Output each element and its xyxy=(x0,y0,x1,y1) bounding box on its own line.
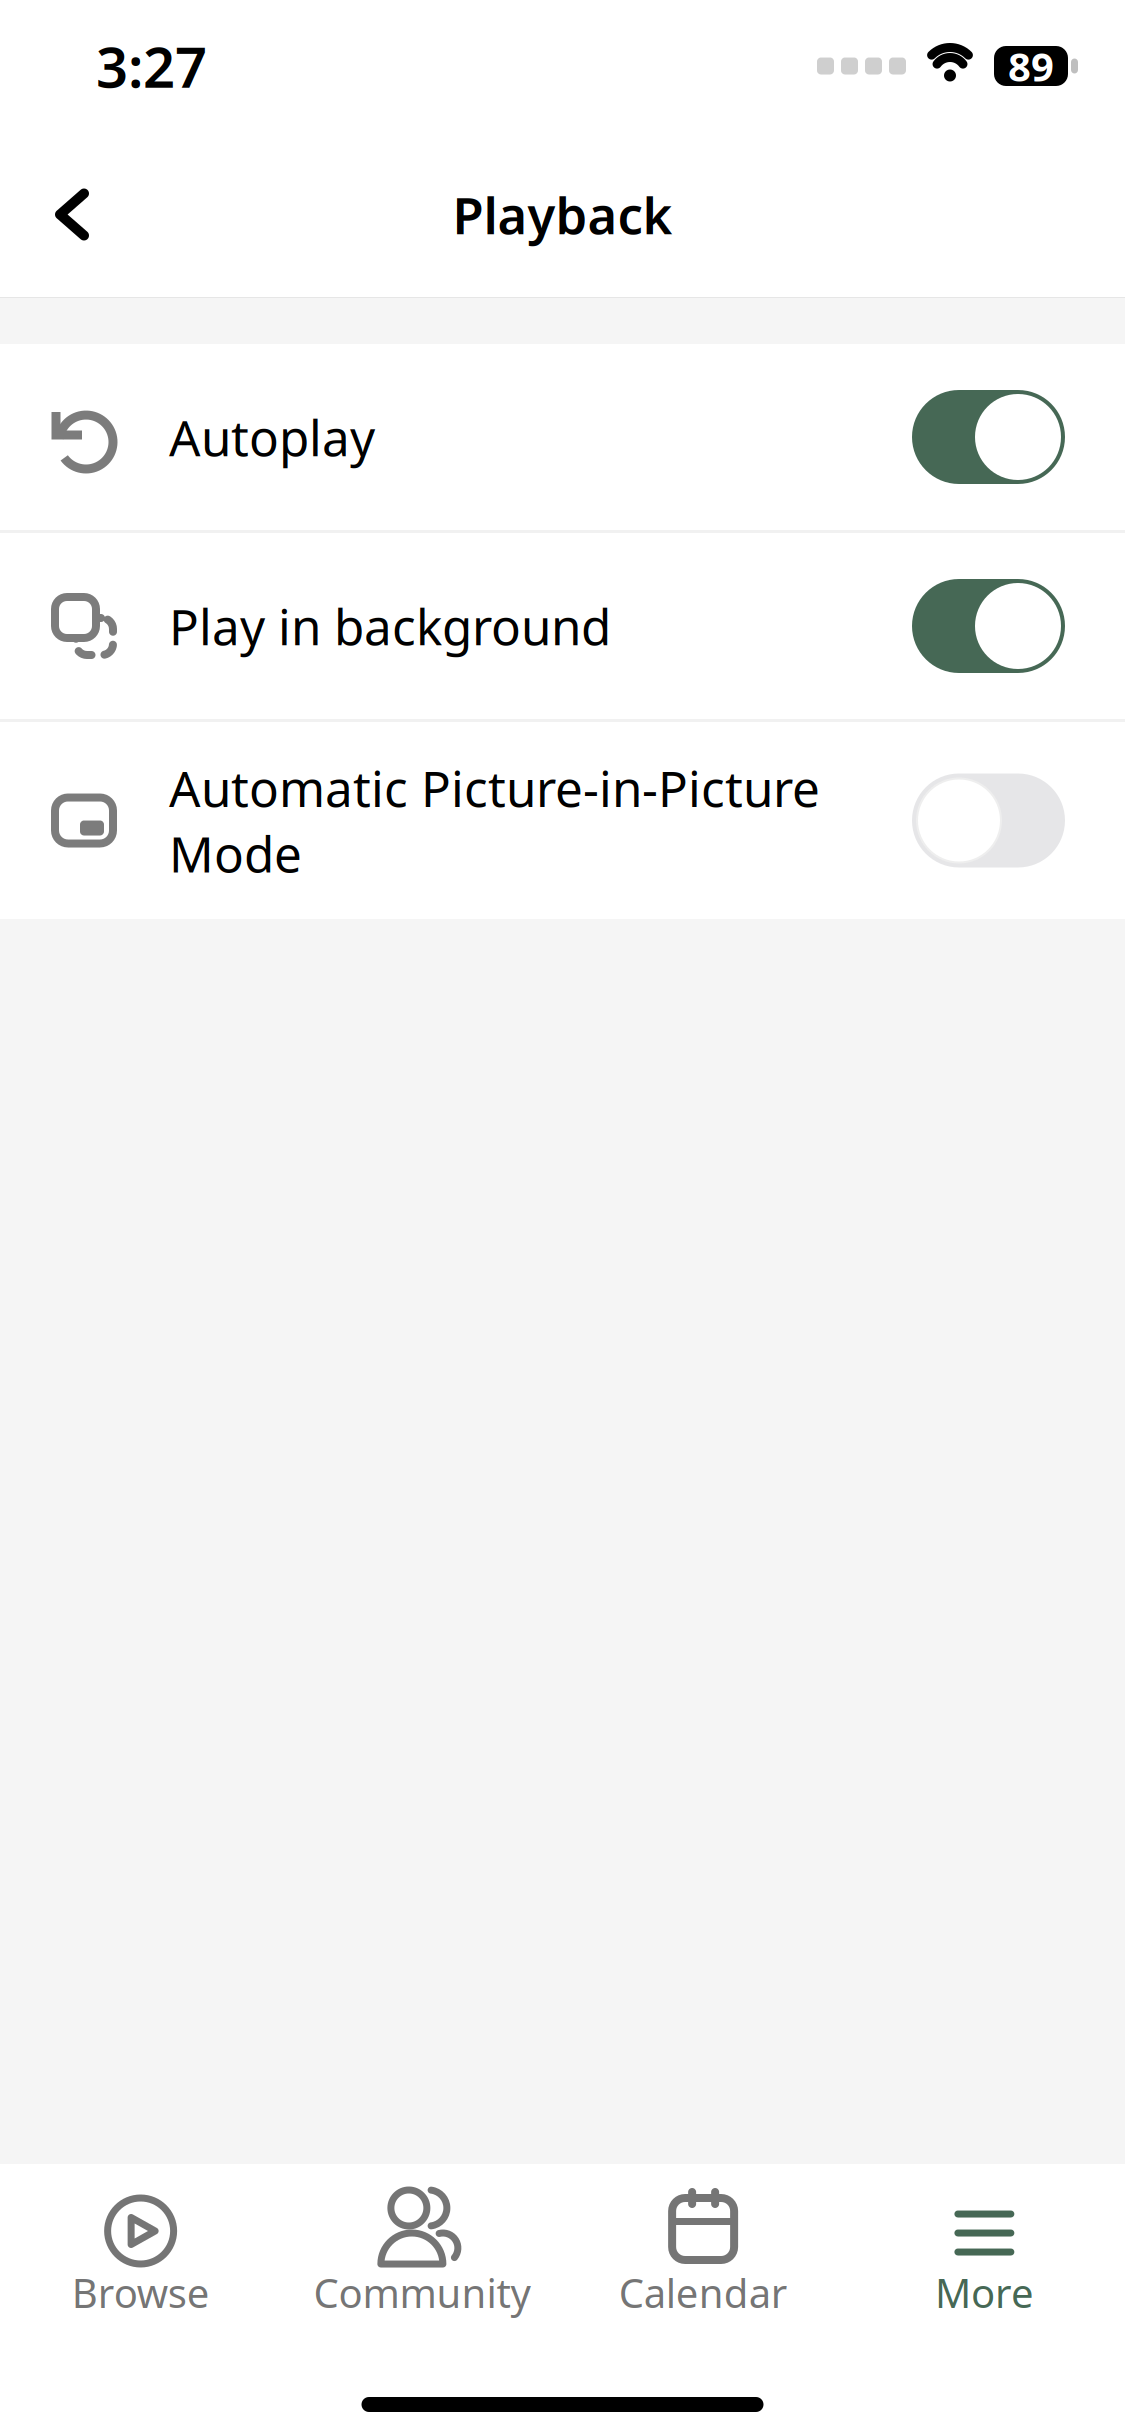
button[interactable]: Play in background xyxy=(0,533,1125,719)
staticText: Community xyxy=(313,2266,530,2319)
button[interactable]: Calendar xyxy=(562,2188,844,2319)
staticText: 3:27 xyxy=(96,29,207,103)
staticText: 89 xyxy=(1008,39,1054,92)
staticText: Playback xyxy=(452,181,672,248)
staticText: More xyxy=(935,2266,1034,2319)
button[interactable]: Autoplay xyxy=(0,344,1125,530)
staticText: Play in background xyxy=(169,593,611,659)
staticText: Automatic Picture-in-Picture Mode xyxy=(169,755,820,886)
button[interactable]: Back xyxy=(0,145,120,283)
staticText: Calendar xyxy=(619,2266,788,2319)
button[interactable]: Browse xyxy=(0,2188,281,2319)
button[interactable]: Automatic Picture-in-Picture Mode xyxy=(0,722,1125,919)
staticText: Autoplay xyxy=(169,404,375,470)
button[interactable]: Community xyxy=(281,2188,562,2319)
button[interactable]: More xyxy=(844,2188,1125,2319)
staticText: Browse xyxy=(72,2266,210,2319)
